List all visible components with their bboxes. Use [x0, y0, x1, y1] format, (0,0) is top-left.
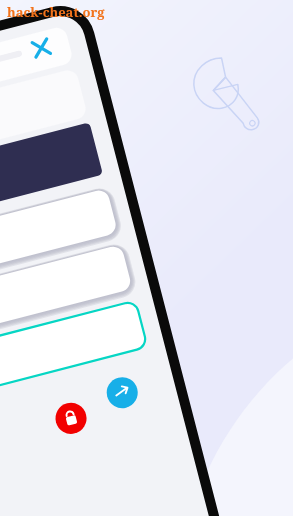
staticText: hack-cheat.org [7, 3, 105, 21]
button[interactable]: Close [88, 60, 110, 82]
button[interactable]: Continue [156, 343, 184, 371]
button[interactable]: Lock [109, 356, 137, 384]
